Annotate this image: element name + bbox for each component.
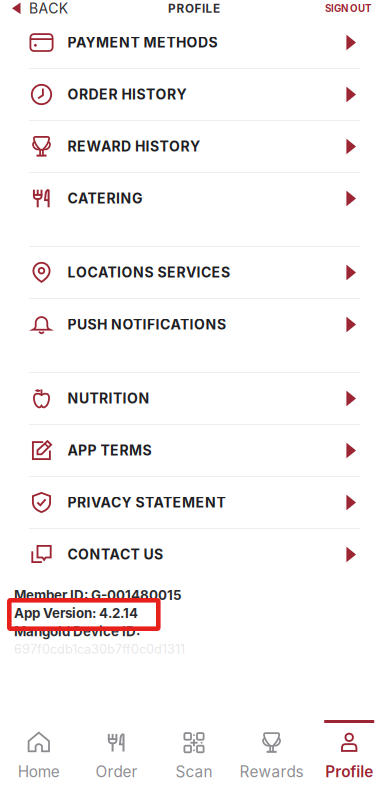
button[interactable]: Order [78, 720, 155, 790]
staticText: Home [18, 762, 60, 781]
staticText: ORDER HISTORY [67, 86, 186, 103]
staticText: NUTRITION [67, 390, 149, 407]
staticText: PROFILE [168, 1, 220, 16]
button[interactable]: CATERING [0, 173, 388, 224]
button[interactable]: NUTRITION [0, 373, 388, 424]
staticText: APP TERMS [67, 442, 151, 459]
button[interactable]: Profile [310, 720, 388, 790]
staticText: 697f0cdb1ca30b7ff0c0d1311 [14, 641, 185, 657]
staticText: PAYMENT METHODS [67, 34, 217, 51]
staticText: Member ID: G-001480015 [14, 587, 182, 603]
staticText: Mangold Device ID: [14, 623, 140, 639]
staticText: Rewards [240, 762, 304, 781]
staticText: CATERING [67, 190, 143, 207]
staticText: PRIVACY STATEMENT [67, 494, 225, 511]
button[interactable]: PAYMENT METHODS [0, 17, 388, 68]
button[interactable]: Scan [155, 720, 233, 790]
staticText: App Version: 4.2.14 [14, 605, 138, 621]
button[interactable]: Home [0, 720, 78, 790]
button[interactable]: LOCATIONS SERVICES [0, 247, 388, 298]
staticText: LOCATIONS SERVICES [67, 264, 230, 281]
button[interactable]: PRIVACY STATEMENT [0, 477, 388, 528]
staticText: BACK [29, 0, 68, 17]
button[interactable]: SIGN OUT [325, 0, 388, 17]
button[interactable]: Rewards [233, 720, 310, 790]
staticText: CONTACT US [67, 546, 163, 563]
staticText: Scan [175, 762, 212, 781]
button[interactable]: ORDER HISTORY [0, 69, 388, 120]
button[interactable]: REWARD HISTORY [0, 121, 388, 172]
staticText: Order [95, 762, 137, 781]
staticText: Profile [325, 762, 373, 781]
button[interactable]: CONTACT US [0, 529, 388, 580]
button[interactable]: APP TERMS [0, 425, 388, 476]
button[interactable]: BACK [0, 0, 76, 17]
staticText: PUSH NOTIFICATIONS [67, 316, 226, 333]
staticText: REWARD HISTORY [67, 138, 200, 155]
staticText: SIGN OUT [325, 3, 371, 14]
button[interactable]: PUSH NOTIFICATIONS [0, 299, 388, 350]
